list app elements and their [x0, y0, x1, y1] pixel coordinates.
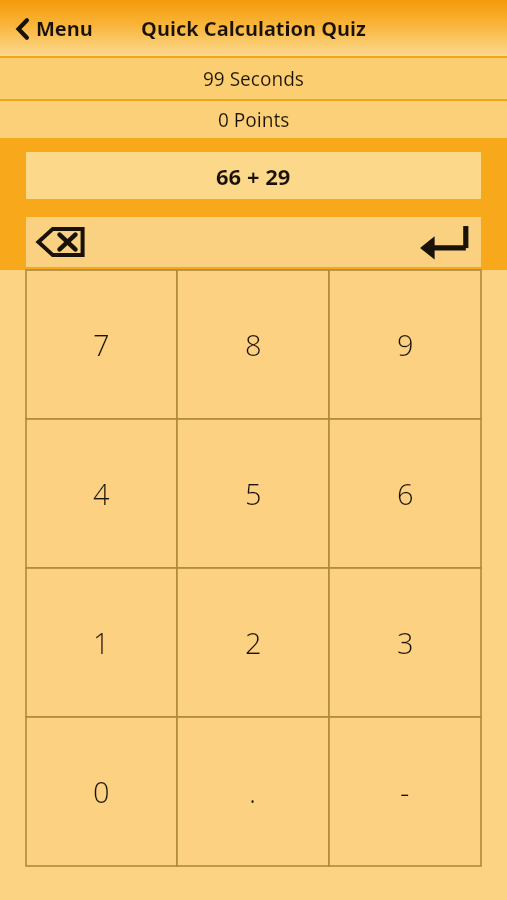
staticText: 66 + 29	[216, 161, 291, 191]
button[interactable]: 3	[329, 568, 481, 717]
staticText: 5	[245, 474, 262, 513]
staticText: 3	[397, 623, 414, 662]
button[interactable]: 0	[26, 717, 177, 866]
staticText: -	[400, 772, 410, 811]
staticText: Menu	[36, 15, 93, 42]
button[interactable]: 6	[329, 419, 481, 568]
staticText: Quick Calculation Quiz	[141, 15, 366, 42]
button[interactable]: .	[177, 717, 329, 866]
staticText: 8	[245, 325, 262, 364]
staticText: 0 Points	[218, 107, 290, 133]
staticText: 4	[93, 474, 110, 513]
staticText: 6	[397, 474, 414, 513]
button[interactable]: Menu	[10, 9, 99, 48]
staticText: 0	[93, 772, 110, 811]
button[interactable]: 1	[26, 568, 177, 717]
staticText: .	[249, 772, 257, 811]
staticText: 9	[397, 325, 414, 364]
button[interactable]: 9	[329, 270, 481, 419]
button[interactable]: 5	[177, 419, 329, 568]
button[interactable]: Backspace	[32, 220, 90, 264]
staticText: 2	[245, 623, 262, 662]
staticText: 1	[93, 623, 110, 662]
button[interactable]: Enter	[413, 219, 477, 265]
button[interactable]: 2	[177, 568, 329, 717]
staticText: 7	[93, 325, 110, 364]
button[interactable]: 8	[177, 270, 329, 419]
staticText: 99 Seconds	[203, 66, 304, 92]
button[interactable]: 4	[26, 419, 177, 568]
button[interactable]: 7	[26, 270, 177, 419]
button[interactable]: -	[329, 717, 481, 866]
